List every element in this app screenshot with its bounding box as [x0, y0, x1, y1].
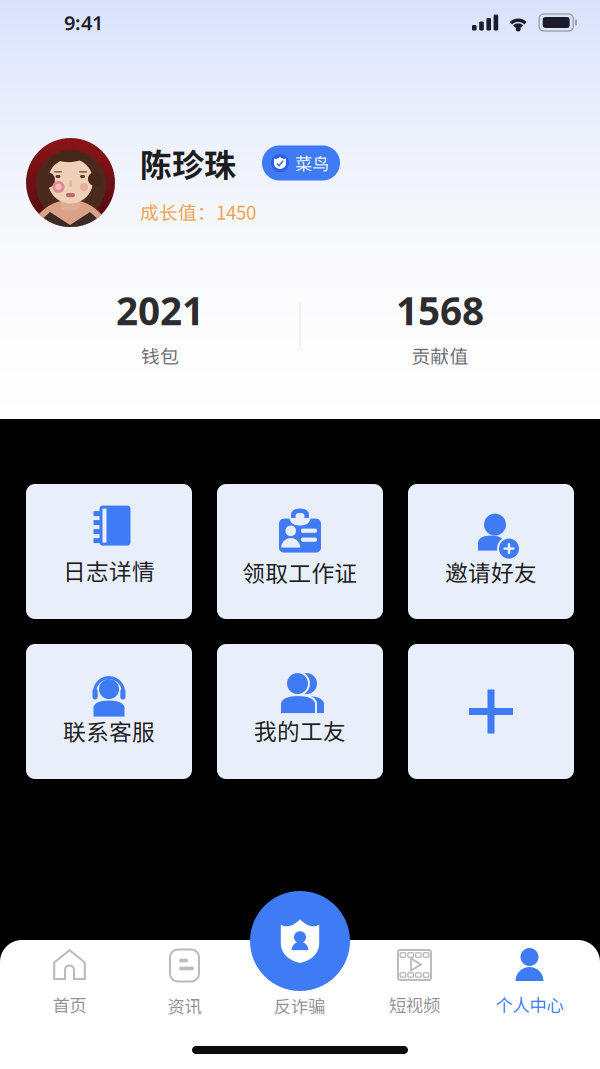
staticText: 菜鸟: [295, 150, 329, 175]
staticText: 个人中心: [495, 992, 563, 1017]
button[interactable]: 联系客服: [26, 644, 192, 779]
staticText: 2021: [116, 285, 204, 336]
staticText: 钱包: [141, 342, 179, 369]
staticText: 9:41: [64, 9, 103, 36]
button[interactable]: 2021: [80, 285, 240, 369]
button[interactable]: [408, 644, 574, 779]
button[interactable]: 我的工友: [217, 644, 383, 779]
staticText: 短视频: [389, 992, 440, 1017]
button[interactable]: 首页: [12, 940, 127, 1035]
button[interactable]: 资讯: [127, 940, 242, 1035]
button[interactable]: 个人中心: [472, 940, 587, 1035]
button[interactable]: Profile photo: [26, 138, 115, 227]
button[interactable]: 反诈骗: [250, 891, 350, 991]
button[interactable]: 反诈骗: [242, 940, 357, 1035]
staticText: 成长值：1450: [140, 198, 256, 225]
staticText: 反诈骗: [274, 993, 325, 1018]
button[interactable]: 短视频: [357, 940, 472, 1035]
button[interactable]: 领取工作证: [217, 484, 383, 619]
staticText: 我的工友: [254, 714, 346, 746]
button[interactable]: 1568: [360, 285, 520, 369]
staticText: 贡献值: [411, 342, 468, 369]
staticText: 首页: [52, 992, 86, 1017]
staticText: 邀请好友: [445, 555, 537, 588]
staticText: 领取工作证: [242, 556, 357, 588]
staticText: 日志详情: [63, 554, 155, 586]
button[interactable]: 日志详情: [26, 484, 192, 619]
staticText: 联系客服: [63, 714, 155, 747]
button[interactable]: 邀请好友: [408, 484, 574, 619]
staticText: 资讯: [167, 993, 201, 1018]
button[interactable]: 菜鸟: [262, 145, 340, 180]
staticText: 陈珍珠: [140, 140, 236, 186]
staticText: 1568: [396, 285, 484, 336]
